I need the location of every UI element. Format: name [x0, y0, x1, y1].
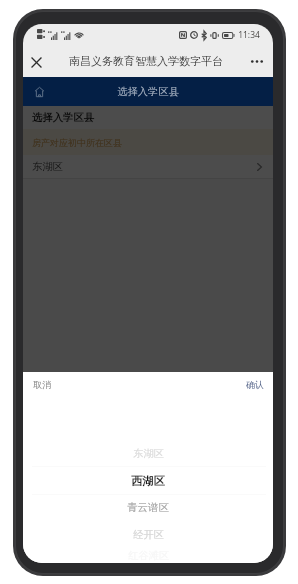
staticText: 房产对应初中所在区县	[32, 137, 122, 148]
button[interactable]: Close	[23, 48, 49, 74]
button[interactable]: 确认	[236, 374, 273, 395]
button[interactable]: 红谷滩区	[23, 548, 273, 563]
button[interactable]: 经开区	[23, 521, 273, 548]
button[interactable]: 西湖区	[23, 467, 273, 494]
staticText: 确认	[246, 379, 264, 390]
button[interactable]: Home	[28, 81, 50, 103]
staticText: 取消	[33, 379, 51, 390]
button[interactable]: 东湖区	[23, 155, 273, 178]
staticText: 南昌义务教育智慧入学数字平台	[69, 54, 223, 68]
staticText: 西湖区	[131, 474, 165, 488]
staticText: 11:34	[238, 29, 260, 41]
button[interactable]: 取消	[23, 374, 61, 395]
staticText: 青云谱区	[127, 501, 169, 514]
staticText: 经开区	[133, 528, 164, 541]
staticText: 东湖区	[32, 160, 63, 173]
staticText: 选择入学区县	[32, 111, 94, 124]
button[interactable]: More options	[245, 49, 269, 73]
button[interactable]: 东湖区	[23, 440, 273, 467]
staticText: 选择入学区县	[117, 85, 179, 98]
button[interactable]: 青云谱区	[23, 494, 273, 521]
staticText: 东湖区	[133, 447, 164, 460]
